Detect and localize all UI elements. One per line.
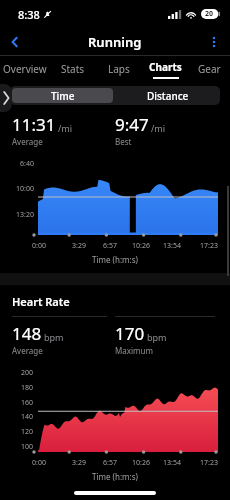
staticText: /mi — [58, 122, 73, 134]
button[interactable]: Open panel — [0, 84, 12, 112]
staticText: Charts — [149, 60, 182, 74]
button[interactable]: Charts — [142, 56, 188, 82]
staticText: Average — [12, 345, 43, 356]
staticText: Time (h:m:s) — [0, 254, 230, 265]
staticText: Running — [88, 33, 142, 51]
staticText: 11:31 — [12, 113, 56, 136]
staticText: 17:23 — [200, 241, 218, 251]
staticText: 3:29 — [72, 241, 86, 251]
staticText: 200 — [21, 368, 34, 378]
button[interactable]: Back — [4, 31, 26, 53]
staticText: 170 — [115, 322, 145, 345]
staticText: 148 — [12, 322, 42, 345]
staticText: Best — [115, 136, 132, 147]
staticText: 6:57 — [103, 241, 117, 251]
staticText: 10:26 — [132, 241, 150, 251]
button[interactable]: Time — [12, 88, 113, 103]
staticText: 13:54 — [163, 241, 181, 251]
staticText: 6:40 — [20, 159, 34, 169]
staticText: Distance — [147, 89, 189, 103]
staticText: bpm — [147, 331, 167, 343]
staticText: 0:00 — [32, 241, 46, 251]
staticText: Gear — [198, 62, 221, 76]
button[interactable]: Gear — [188, 56, 230, 82]
staticText: 9:47 — [115, 113, 149, 136]
button[interactable]: Stats — [50, 56, 96, 82]
staticText: 0:00 — [32, 458, 46, 468]
staticText: Maximum — [115, 345, 153, 356]
staticText: 13:54 — [163, 458, 181, 468]
staticText: 10:26 — [132, 458, 150, 468]
staticText: Stats — [61, 62, 85, 76]
staticText: 6:57 — [103, 458, 117, 468]
staticText: 180 — [21, 383, 34, 393]
staticText: 17:23 — [200, 458, 218, 468]
staticText: Overview — [3, 62, 47, 76]
staticText: 13:20 — [16, 210, 34, 220]
button[interactable]: Laps — [96, 56, 142, 82]
staticText: 10:00 — [16, 184, 34, 194]
button[interactable]: Overview — [0, 56, 50, 82]
staticText: 140 — [21, 412, 34, 422]
staticText: bpm — [44, 331, 64, 343]
staticText: Time — [51, 89, 75, 103]
staticText: Average — [12, 136, 43, 147]
staticText: Laps — [108, 62, 130, 76]
staticText: 120 — [21, 427, 34, 437]
button[interactable]: More options — [203, 31, 225, 53]
staticText: Time (h:m:s) — [0, 471, 230, 482]
staticText: 100 — [21, 442, 34, 452]
staticText: 160 — [21, 398, 34, 408]
staticText: 8:38 — [18, 7, 40, 22]
staticText: /mi — [151, 122, 166, 134]
staticText: 3:29 — [72, 458, 86, 468]
button[interactable]: Distance — [117, 88, 218, 103]
staticText: Heart Rate — [12, 294, 70, 309]
staticText: 20 — [205, 9, 214, 19]
